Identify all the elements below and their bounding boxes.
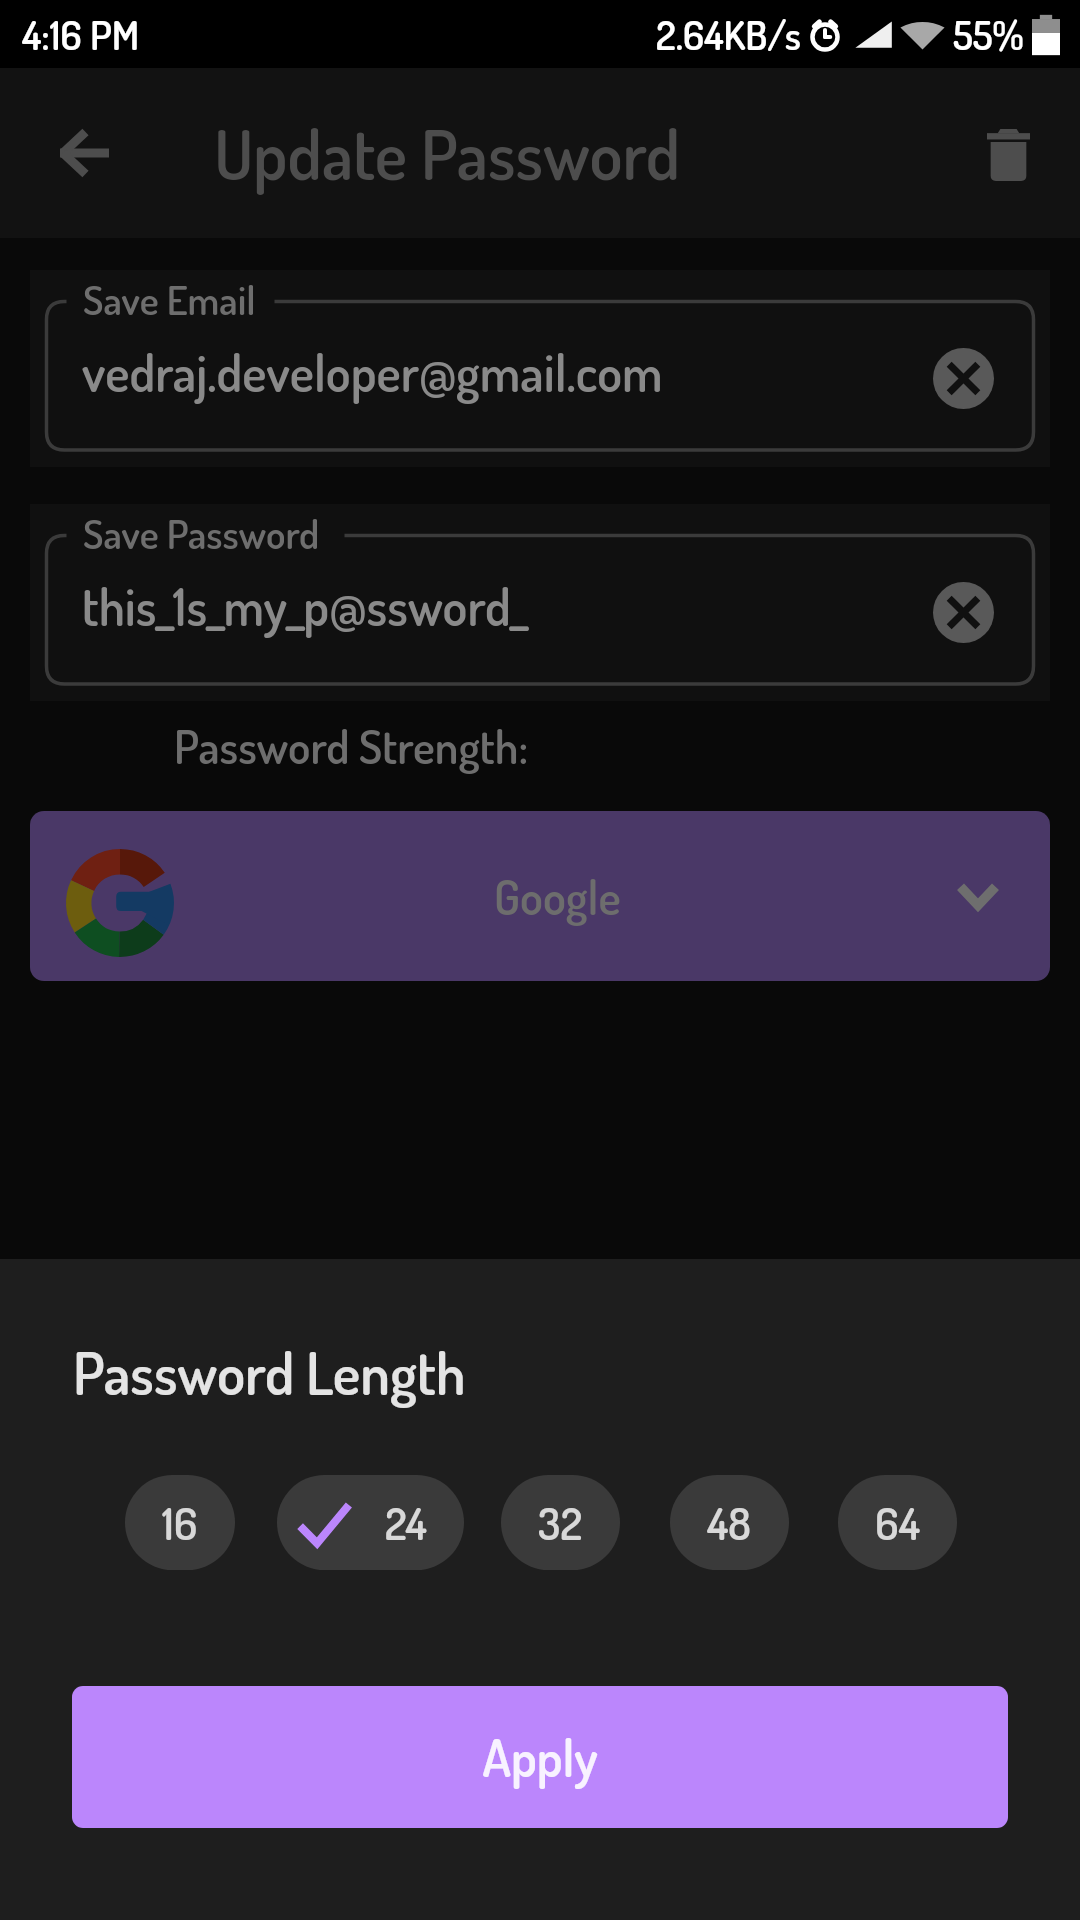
staticText: 2.64KB/s (656, 9, 801, 60)
staticText: Save Password (83, 508, 320, 559)
staticText: 4:16 PM (22, 9, 140, 60)
staticText: Apply (482, 1725, 598, 1789)
staticText: 64 (875, 1495, 920, 1551)
button[interactable]: Delete (958, 103, 1058, 203)
staticText: Password Strength: (174, 717, 529, 775)
button[interactable]: Clear text (924, 573, 1002, 651)
button[interactable]: 32 (501, 1475, 620, 1570)
staticText: Password Length (73, 1335, 466, 1408)
staticText: this_1s_my_p@ssword_ (82, 574, 528, 638)
button[interactable]: 16 (125, 1475, 235, 1570)
staticText: 55% (953, 9, 1024, 60)
button[interactable]: Google (30, 811, 1050, 981)
staticText: Update Password (214, 110, 681, 196)
staticText: 32 (538, 1495, 583, 1551)
button[interactable]: Clear text (924, 339, 1002, 417)
button[interactable]: 24 (277, 1475, 464, 1570)
staticText: 48 (707, 1495, 752, 1551)
staticText: Google (494, 867, 621, 926)
button[interactable]: Navigate up (34, 103, 134, 203)
button[interactable]: Apply (72, 1686, 1008, 1828)
button[interactable]: 64 (838, 1475, 957, 1570)
staticText: vedraj.developer@gmail.com (82, 340, 663, 404)
staticText: Save Email (83, 274, 256, 325)
staticText: 24 (385, 1495, 427, 1551)
button[interactable]: Save Email (30, 270, 1050, 467)
button[interactable]: 48 (670, 1475, 789, 1570)
button[interactable]: Save Password (30, 504, 1050, 701)
staticText: 16 (162, 1495, 198, 1551)
button[interactable]: Expand (936, 854, 1020, 938)
